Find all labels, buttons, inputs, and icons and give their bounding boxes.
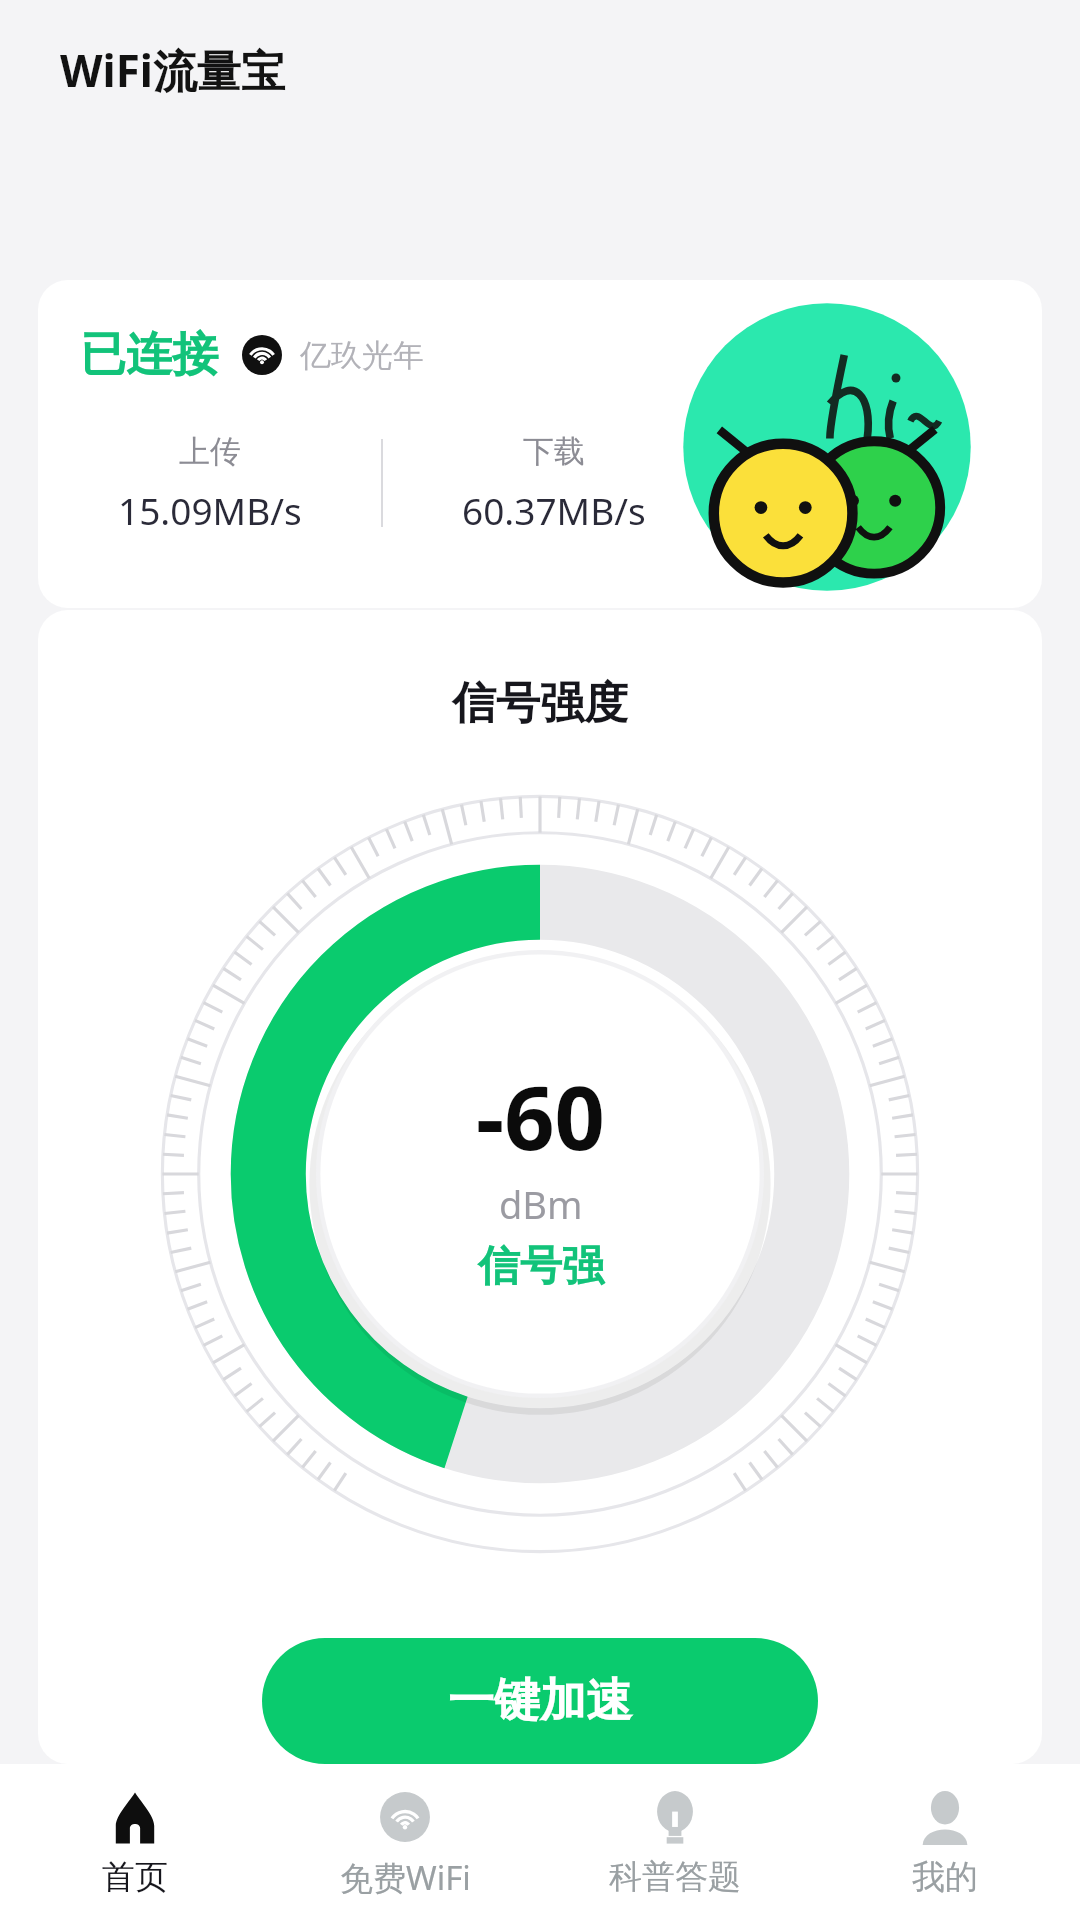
staticText: 下载 bbox=[523, 432, 585, 471]
staticText: 信号强度 bbox=[452, 676, 628, 731]
button[interactable]: 一键加速 bbox=[262, 1638, 818, 1764]
staticText: 上传 bbox=[179, 432, 241, 471]
staticText: dBm bbox=[499, 1178, 583, 1230]
button[interactable]: 首页 bbox=[0, 1764, 270, 1920]
button[interactable]: 科普答题 bbox=[540, 1764, 810, 1920]
staticText: WiFi流量宝 bbox=[60, 40, 286, 100]
button[interactable]: 免费WiFi bbox=[270, 1764, 540, 1920]
staticText: 首页 bbox=[102, 1856, 168, 1898]
staticText: 已连接 bbox=[80, 326, 218, 384]
staticText: 科普答题 bbox=[609, 1856, 741, 1898]
staticText: 我的 bbox=[912, 1856, 978, 1898]
staticText: 亿玖光年 bbox=[300, 336, 424, 375]
staticText: 免费WiFi bbox=[340, 1855, 471, 1900]
staticText: 信号强 bbox=[478, 1240, 604, 1293]
staticText: 15.09MB/s bbox=[118, 485, 302, 535]
staticText: -60 bbox=[476, 1056, 605, 1176]
staticText: 延时 bbox=[854, 432, 916, 471]
staticText: 71ms bbox=[837, 485, 932, 535]
button[interactable]: 我的 bbox=[810, 1764, 1080, 1920]
staticText: 一键加速 bbox=[448, 1672, 632, 1730]
button[interactable]: 已连接 bbox=[38, 280, 1042, 608]
staticText: 60.37MB/s bbox=[462, 485, 646, 535]
